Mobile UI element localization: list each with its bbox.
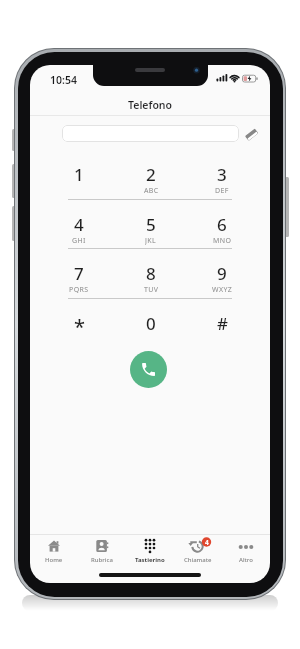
- button[interactable]: 2: [131, 163, 171, 207]
- button[interactable]: 4: [59, 213, 99, 257]
- staticText: 2: [146, 163, 156, 185]
- staticText: WXYZ: [212, 285, 233, 294]
- staticText: ABC: [144, 186, 159, 195]
- staticText: 9: [217, 262, 227, 284]
- staticText: 8: [146, 262, 156, 284]
- staticText: MNO: [213, 236, 232, 245]
- staticText: 6: [217, 213, 227, 235]
- button[interactable]: [62, 125, 239, 142]
- button[interactable]: Chiamate: [174, 536, 222, 569]
- staticText: PQRS: [69, 285, 89, 294]
- button[interactable]: Tastierino: [126, 536, 174, 569]
- staticText: DEF: [215, 186, 229, 195]
- staticText: Home: [45, 556, 63, 564]
- button[interactable]: Altro: [222, 536, 270, 569]
- staticText: TUV: [144, 285, 159, 294]
- staticText: Tastierino: [135, 556, 165, 564]
- staticText: Altro: [239, 556, 253, 564]
- staticText: 3: [217, 163, 227, 185]
- staticText: 0: [146, 312, 156, 334]
- staticText: Telefono: [128, 98, 173, 111]
- button[interactable]: Home: [30, 536, 78, 569]
- staticText: 4: [205, 538, 209, 547]
- button[interactable]: Rubrica: [78, 536, 126, 569]
- button[interactable]: 6: [202, 213, 242, 257]
- staticText: GHI: [72, 236, 86, 245]
- staticText: #: [217, 312, 228, 334]
- staticText: JKL: [145, 236, 157, 245]
- button[interactable]: [130, 351, 167, 388]
- button[interactable]: 0: [131, 312, 171, 334]
- staticText: Rubrica: [91, 556, 113, 564]
- button[interactable]: 8: [131, 262, 171, 306]
- button[interactable]: 3: [202, 163, 242, 207]
- button[interactable]: *: [59, 313, 99, 335]
- staticText: 7: [74, 262, 84, 284]
- button[interactable]: 1: [59, 163, 99, 207]
- button[interactable]: 7: [59, 262, 99, 306]
- staticText: *: [74, 313, 85, 335]
- staticText: 1: [74, 163, 84, 185]
- staticText: Chiamate: [184, 556, 212, 564]
- staticText: 10:54: [50, 73, 77, 85]
- button[interactable]: #: [202, 312, 242, 334]
- button[interactable]: 9: [202, 262, 242, 306]
- staticText: 5: [146, 213, 156, 235]
- button[interactable]: 5: [131, 213, 171, 257]
- staticText: 4: [74, 213, 84, 235]
